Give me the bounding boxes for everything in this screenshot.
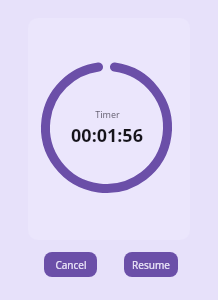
staticText: Resume: [132, 258, 170, 272]
button[interactable]: Resume: [124, 252, 178, 277]
staticText: Timer: [95, 108, 120, 120]
staticText: 00:01:56: [71, 123, 143, 148]
staticText: Cancel: [55, 258, 87, 272]
button[interactable]: Cancel: [44, 252, 97, 277]
